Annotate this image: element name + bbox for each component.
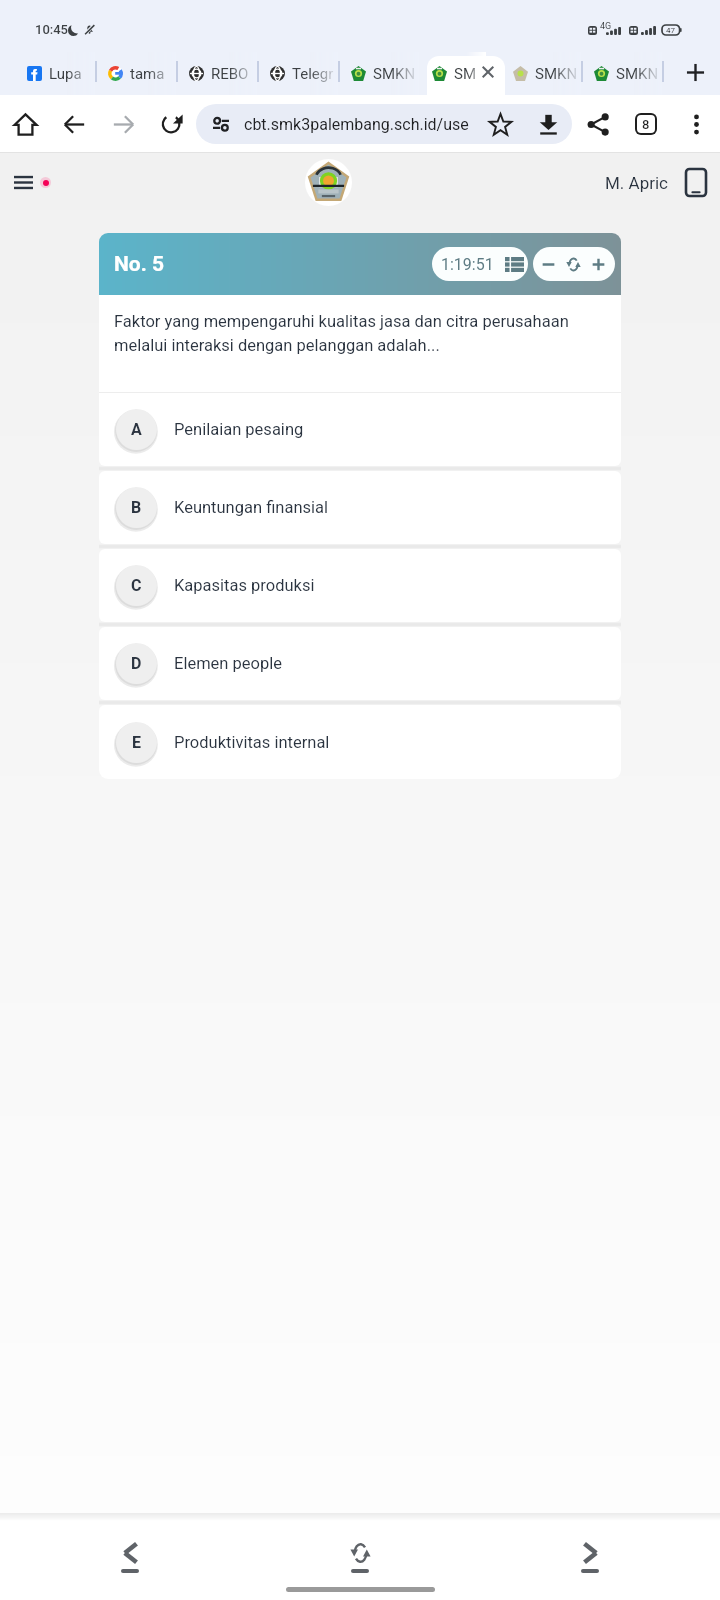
staticText: 8 — [642, 117, 650, 132]
staticText: Elemen people — [174, 654, 283, 673]
button[interactable]: Device — [686, 169, 706, 196]
button[interactable]: tama — [102, 52, 176, 95]
button[interactable]: Previous — [74, 1542, 186, 1588]
button[interactable]: New tab — [679, 56, 711, 88]
button[interactable]: Reload — [153, 105, 191, 143]
button[interactable]: SMKN — [507, 52, 581, 95]
button[interactable]: cbt.smk3palembang.sch.id/use — [196, 104, 572, 144]
staticText: A — [131, 420, 142, 439]
staticText: No. 5 — [114, 252, 165, 277]
button[interactable]: Lupa — [21, 52, 95, 95]
staticText: SMKN — [616, 65, 659, 83]
button[interactable]: SMKN — [588, 52, 662, 95]
button[interactable]: Back — [55, 105, 93, 143]
staticText: SMKN — [535, 65, 578, 83]
staticText: Kapasitas produksi — [174, 576, 315, 595]
button[interactable]: D — [99, 627, 621, 700]
button[interactable]: Download — [529, 105, 567, 143]
staticText: Produktivitas internal — [174, 733, 330, 752]
staticText: D — [131, 654, 142, 673]
staticText: Faktor yang mempengaruhi kualitas jasa d… — [114, 312, 603, 355]
staticText: 4G — [600, 21, 612, 32]
staticText: Penilaian pesaing — [174, 420, 304, 439]
staticText: 10:45 — [35, 22, 68, 37]
staticText: Keuntungan finansial — [174, 498, 329, 517]
button[interactable]: Share — [579, 105, 617, 143]
button[interactable]: REBO — [183, 52, 257, 95]
button[interactable]: C — [99, 549, 621, 622]
staticText: E — [132, 733, 141, 752]
button[interactable]: Telegr — [264, 52, 338, 95]
button[interactable]: Bookmark — [481, 105, 519, 143]
staticText: tama — [130, 65, 165, 83]
staticText: 47 — [666, 26, 675, 35]
staticText: SM — [454, 65, 477, 83]
staticText: Telegr — [292, 65, 334, 83]
button[interactable]: SMKN — [345, 52, 419, 95]
button[interactable]: Next — [534, 1542, 646, 1588]
button[interactable]: More options — [677, 105, 715, 143]
staticText: cbt.smk3palembang.sch.id/use — [244, 115, 469, 134]
staticText: M. Apric — [605, 173, 668, 193]
button[interactable]: Refresh — [304, 1542, 416, 1588]
button[interactable]: SM — [426, 52, 500, 95]
staticText: B — [131, 498, 142, 517]
button[interactable]: 1:19:51 — [432, 247, 528, 281]
button[interactable]: E — [99, 705, 621, 779]
staticText: C — [131, 576, 142, 595]
button[interactable]: B — [99, 471, 621, 544]
staticText: Lupa — [49, 65, 82, 83]
button[interactable]: Home — [6, 105, 44, 143]
button[interactable]: Tabs — [627, 105, 665, 143]
staticText: 1:19:51 — [441, 255, 494, 274]
button[interactable]: Zoom in — [587, 253, 609, 275]
button[interactable]: Zoom out — [537, 253, 559, 275]
button[interactable]: Forward — [104, 105, 142, 143]
button[interactable]: A — [99, 393, 621, 466]
button[interactable]: Reset zoom — [562, 253, 584, 275]
staticText: SMKN — [373, 65, 416, 83]
button[interactable]: Close tab — [477, 61, 499, 83]
button[interactable]: Menu — [4, 168, 61, 197]
staticText: REBO — [211, 65, 249, 83]
